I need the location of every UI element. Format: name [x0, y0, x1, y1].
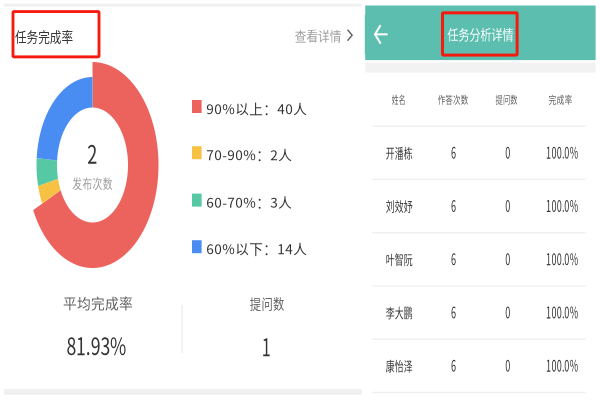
- staticText: 开潘栋: [380, 143, 419, 161]
- staticText: 60-70%：3人: [206, 192, 292, 212]
- staticText: 100.0%: [535, 354, 589, 376]
- staticText: 0: [503, 301, 512, 323]
- staticText: 6: [449, 194, 458, 217]
- staticText: 发布次数: [67, 174, 119, 192]
- staticText: 6: [449, 354, 458, 376]
- staticText: 0: [503, 141, 512, 163]
- staticText: 李大鹏: [380, 303, 419, 321]
- staticText: 平均完成率: [63, 292, 133, 312]
- button[interactable]: 查看详情: [294, 20, 362, 50]
- staticText: 60%以下：14人: [206, 239, 307, 258]
- staticText: 100.0%: [535, 247, 589, 270]
- staticText: 姓名: [388, 91, 410, 107]
- staticText: 刘效妤: [380, 196, 419, 215]
- staticText: 6: [449, 301, 458, 323]
- staticText: 0: [503, 247, 512, 270]
- staticText: 70-90%：2人: [206, 145, 292, 164]
- staticText: 100.0%: [535, 194, 589, 217]
- staticText: 2: [85, 133, 100, 171]
- staticText: 任务分析详情: [441, 24, 519, 44]
- staticText: 1: [260, 329, 273, 363]
- staticText: 查看详情: [295, 26, 347, 44]
- staticText: 完成率: [544, 91, 577, 107]
- staticText: 6: [449, 247, 458, 270]
- staticText: 6: [449, 141, 458, 163]
- staticText: 任务完成率: [15, 26, 85, 46]
- staticText: 康怡泽: [380, 356, 419, 374]
- staticText: 0: [503, 194, 512, 217]
- staticText: 叶智阮: [380, 249, 419, 268]
- staticText: 提问数: [246, 293, 288, 313]
- staticText: 100.0%: [535, 141, 589, 163]
- staticText: 0: [503, 354, 512, 376]
- staticText: 作答次数: [431, 91, 475, 107]
- button[interactable]: Back: [365, 14, 399, 54]
- staticText: 提问数: [490, 91, 523, 107]
- staticText: 100.0%: [535, 301, 589, 323]
- staticText: 81.93%: [56, 328, 137, 362]
- staticText: 90%以上：40人: [206, 98, 307, 118]
